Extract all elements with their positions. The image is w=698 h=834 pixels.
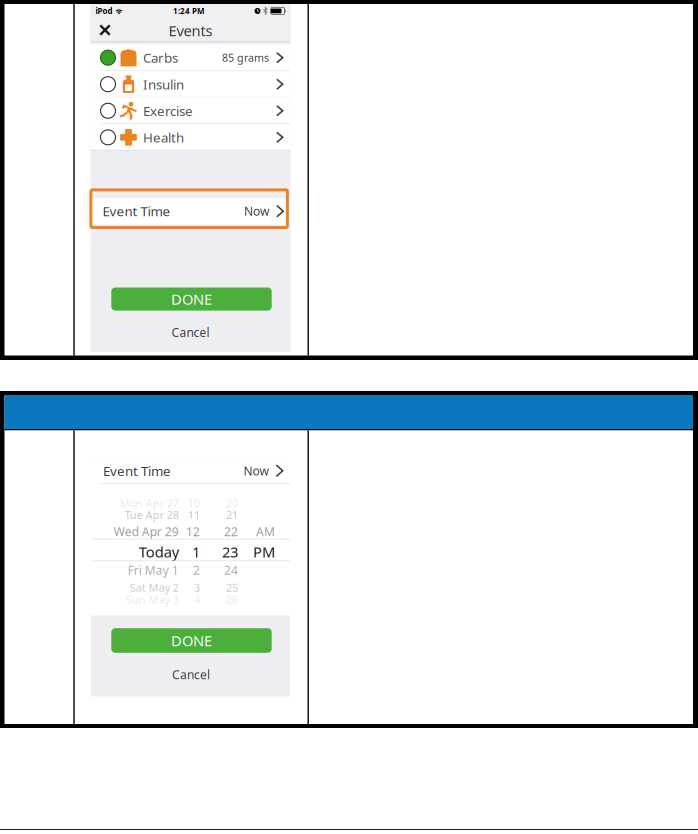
- staticText: Health: [143, 128, 184, 146]
- staticText: Events: [168, 21, 212, 40]
- staticText: Exercise: [143, 102, 193, 120]
- staticText: 3: [194, 580, 200, 595]
- button[interactable]: Carbs: [90, 44, 290, 71]
- button[interactable]: Insulin: [90, 71, 290, 97]
- staticText: iPod: [95, 6, 112, 16]
- staticText: Now: [244, 203, 269, 219]
- staticText: 85 grams: [222, 51, 269, 65]
- button[interactable]: Health: [90, 124, 290, 151]
- button[interactable]: DONE: [111, 287, 272, 311]
- staticText: Event Time: [103, 462, 171, 480]
- staticText: Sun May 3: [126, 592, 179, 607]
- staticText: 10: [188, 496, 200, 510]
- staticText: 24: [224, 562, 238, 578]
- staticText: PM: [253, 542, 275, 562]
- button[interactable]: Exercise: [90, 97, 290, 124]
- staticText: DONE: [171, 631, 212, 650]
- staticText: 4: [194, 592, 200, 607]
- staticText: 21: [226, 508, 238, 522]
- staticText: 20: [226, 496, 238, 510]
- staticText: Insulin: [143, 75, 184, 93]
- button[interactable]: DONE: [111, 628, 272, 653]
- staticText: Sat May 2: [130, 580, 179, 595]
- staticText: Fri May 1: [128, 562, 179, 578]
- staticText: Mon Apr 27: [120, 496, 179, 510]
- staticText: Cancel: [171, 324, 209, 340]
- staticText: Now: [243, 463, 268, 479]
- staticText: AM: [256, 524, 275, 540]
- staticText: Today: [139, 542, 179, 562]
- staticText: 11: [188, 508, 200, 522]
- staticText: 23: [222, 542, 238, 562]
- button[interactable]: Event Time: [91, 457, 290, 484]
- staticText: Event Time: [102, 202, 170, 220]
- staticText: Cancel: [172, 666, 210, 682]
- staticText: 2: [193, 562, 200, 578]
- staticText: 25: [226, 580, 238, 595]
- staticText: Tue Apr 28: [125, 508, 179, 522]
- staticText: DONE: [171, 289, 212, 309]
- staticText: 22: [224, 524, 238, 540]
- staticText: 1:24 PM: [173, 6, 205, 16]
- staticText: Carbs: [143, 49, 178, 66]
- button[interactable]: Event Time: [90, 198, 290, 225]
- staticText: 12: [186, 524, 200, 540]
- button[interactable]: Close: [94, 19, 115, 41]
- button[interactable]: Cancel: [151, 666, 231, 682]
- staticText: 1: [192, 542, 200, 562]
- button[interactable]: Cancel: [150, 324, 230, 340]
- staticText: Wed Apr 29: [114, 524, 179, 540]
- staticText: 26: [226, 592, 238, 607]
